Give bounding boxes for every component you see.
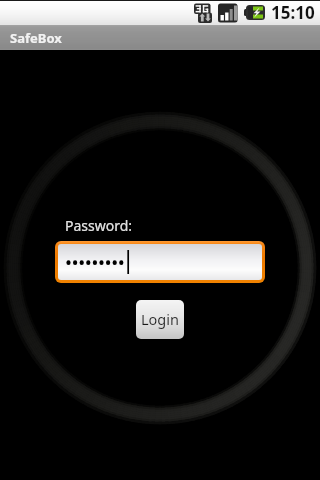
staticText: SafeBox	[10, 29, 62, 47]
staticText: 15:10	[271, 1, 315, 24]
button[interactable]: Login	[136, 300, 184, 339]
staticText: Login	[141, 309, 179, 329]
button[interactable]: Password input field	[55, 241, 265, 283]
staticText: Password:	[65, 216, 133, 235]
